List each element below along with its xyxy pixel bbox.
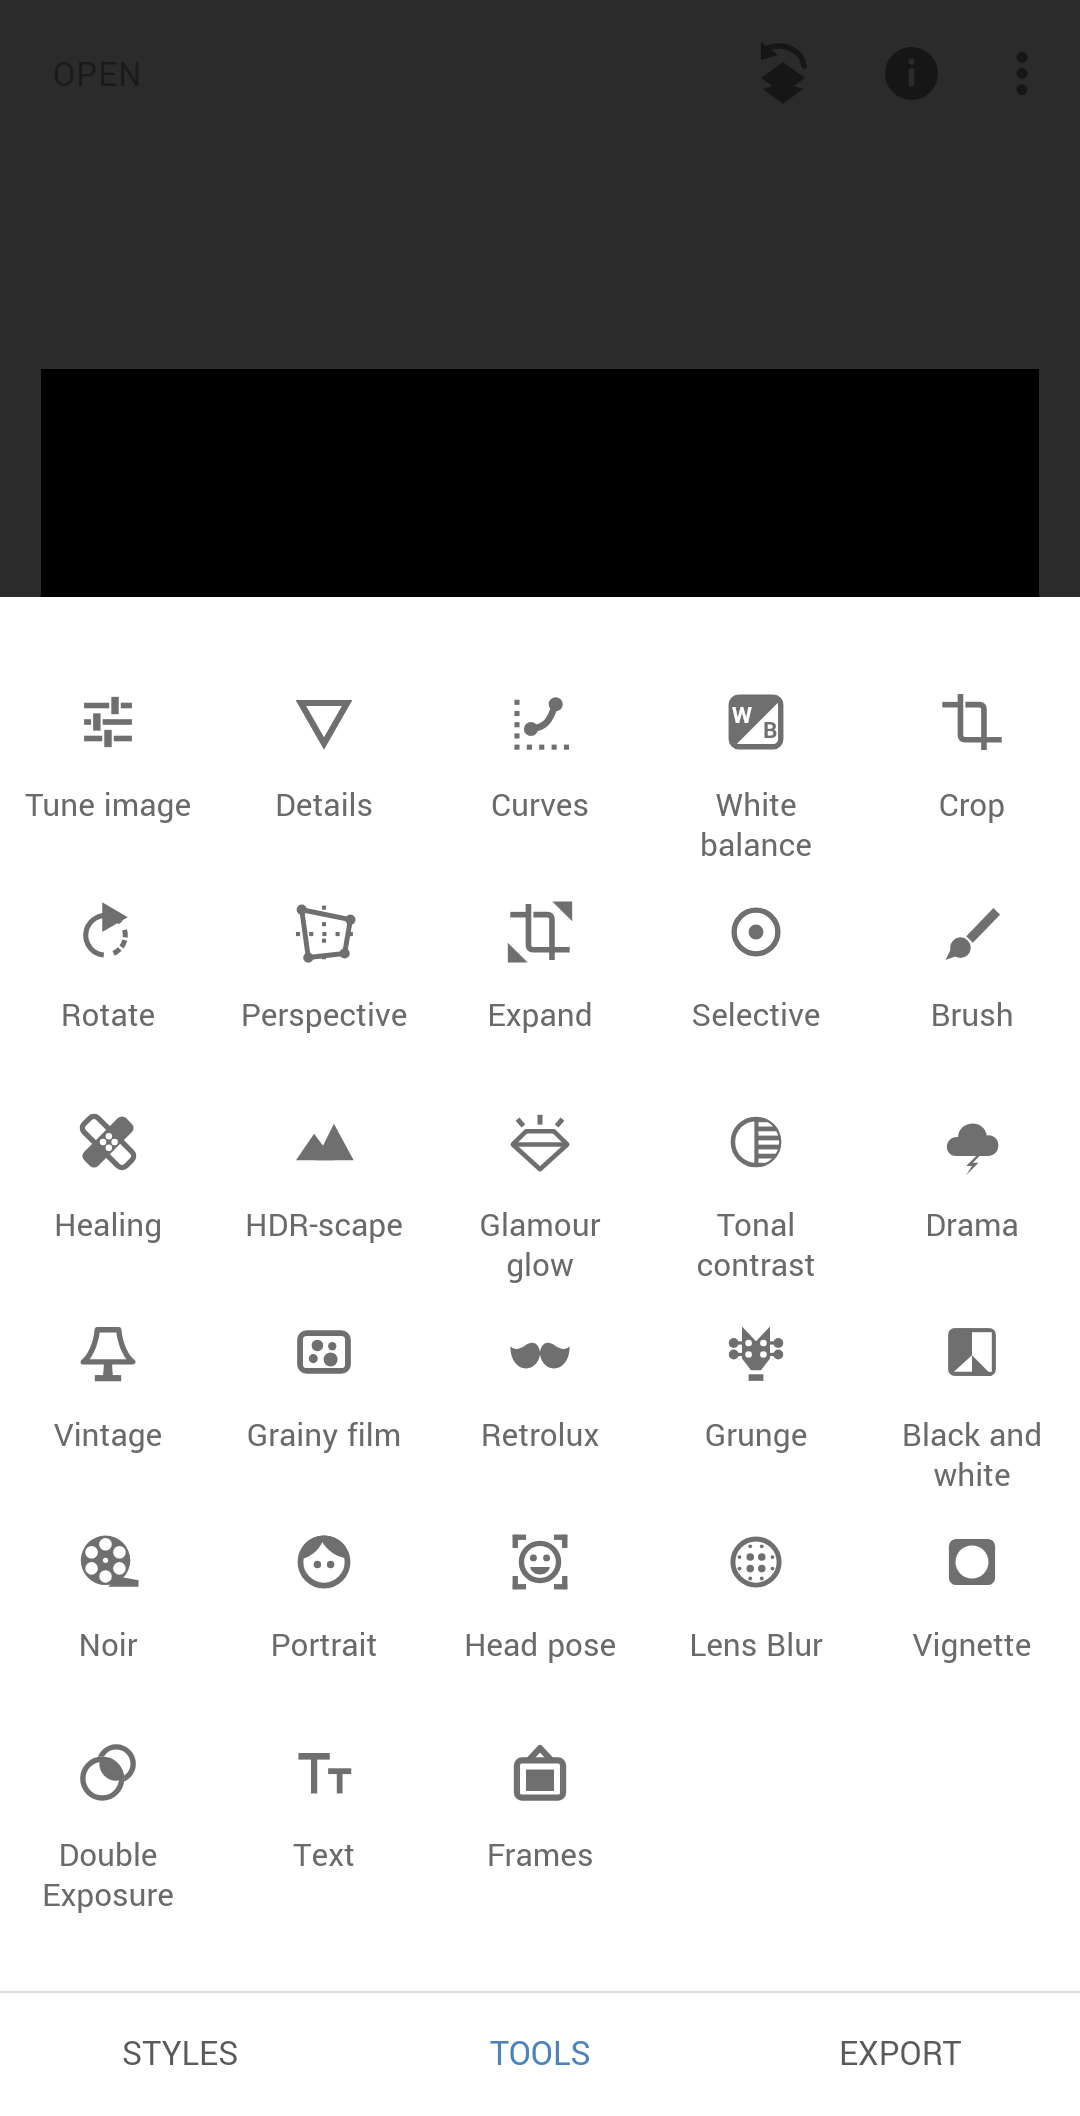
staticText: Drama bbox=[864, 1203, 1080, 1248]
button[interactable]: STYLES bbox=[0, 1993, 360, 2116]
staticText: Brush bbox=[864, 993, 1080, 1038]
staticText: Curves bbox=[432, 783, 648, 828]
button[interactable]: Head pose bbox=[432, 1437, 648, 1647]
staticText: Text bbox=[216, 1833, 432, 1878]
staticText: Glamour glow bbox=[432, 1203, 648, 1288]
button[interactable]: Grunge bbox=[648, 1227, 864, 1437]
staticText: Double Exposure bbox=[0, 1833, 216, 1918]
button[interactable]: W bbox=[648, 597, 864, 807]
staticText: Frames bbox=[432, 1833, 648, 1878]
button[interactable]: Frames bbox=[432, 1647, 648, 1857]
button[interactable]: Curves bbox=[432, 597, 648, 807]
staticText: Perspective bbox=[216, 993, 432, 1038]
button[interactable]: Drama bbox=[864, 1017, 1080, 1227]
button[interactable]: HDR-scape bbox=[216, 1017, 432, 1227]
staticText: Head pose bbox=[432, 1623, 648, 1668]
button[interactable]: Vignette bbox=[864, 1437, 1080, 1647]
button[interactable]: TOOLS bbox=[360, 1993, 720, 2116]
button[interactable]: Double Exposure bbox=[0, 1647, 216, 1857]
staticText: Lens Blur bbox=[648, 1623, 864, 1668]
staticText: Details bbox=[216, 783, 432, 828]
staticText: Crop bbox=[864, 783, 1080, 828]
staticText: Black and white bbox=[864, 1413, 1080, 1498]
button[interactable]: OPEN bbox=[23, 35, 173, 116]
button[interactable]: Undo bbox=[733, 23, 833, 123]
button[interactable]: Lens Blur bbox=[648, 1437, 864, 1647]
button[interactable]: Rotate bbox=[0, 807, 216, 1017]
button[interactable]: Text bbox=[216, 1647, 432, 1857]
staticText: Vignette bbox=[864, 1623, 1080, 1668]
button[interactable]: Info bbox=[861, 23, 961, 123]
staticText: Rotate bbox=[0, 993, 216, 1038]
staticText: TOOLS bbox=[490, 2031, 591, 2078]
button[interactable]: Crop bbox=[864, 597, 1080, 807]
button[interactable]: Grainy film bbox=[216, 1227, 432, 1437]
button[interactable]: Tune image bbox=[0, 597, 216, 807]
staticText: STYLES bbox=[122, 2031, 239, 2078]
button[interactable]: Portrait bbox=[216, 1437, 432, 1647]
staticText: Retrolux bbox=[432, 1413, 648, 1458]
staticText: White balance bbox=[648, 783, 864, 868]
button[interactable]: Glamour glow bbox=[432, 1017, 648, 1227]
staticText: Healing bbox=[0, 1203, 216, 1248]
button[interactable]: Details bbox=[216, 597, 432, 807]
button[interactable]: Perspective bbox=[216, 807, 432, 1017]
staticText: Noir bbox=[0, 1623, 216, 1668]
button[interactable]: Brush bbox=[864, 807, 1080, 1017]
staticText: Grainy film bbox=[216, 1413, 432, 1458]
staticText: HDR-scape bbox=[216, 1203, 432, 1248]
staticText: B bbox=[763, 715, 778, 747]
button[interactable]: Expand bbox=[432, 807, 648, 1017]
staticText: W bbox=[732, 700, 752, 732]
staticText: Vintage bbox=[0, 1413, 216, 1458]
button[interactable]: Noir bbox=[0, 1437, 216, 1647]
button[interactable]: EXPORT bbox=[720, 1993, 1080, 2116]
staticText: Tonal contrast bbox=[648, 1203, 864, 1288]
button[interactable]: Black and white bbox=[864, 1227, 1080, 1437]
button[interactable]: Vintage bbox=[0, 1227, 216, 1437]
staticText: Expand bbox=[432, 993, 648, 1038]
button[interactable]: More options bbox=[972, 23, 1072, 123]
staticText: Grunge bbox=[648, 1413, 864, 1458]
staticText: Selective bbox=[648, 993, 864, 1038]
button[interactable]: Tonal contrast bbox=[648, 1017, 864, 1227]
button[interactable]: Healing bbox=[0, 1017, 216, 1227]
button[interactable]: Selective bbox=[648, 807, 864, 1017]
button[interactable]: Retrolux bbox=[432, 1227, 648, 1437]
staticText: Portrait bbox=[216, 1623, 432, 1668]
staticText: Tune image bbox=[0, 783, 216, 828]
staticText: OPEN bbox=[53, 52, 143, 99]
staticText: EXPORT bbox=[839, 2031, 962, 2078]
